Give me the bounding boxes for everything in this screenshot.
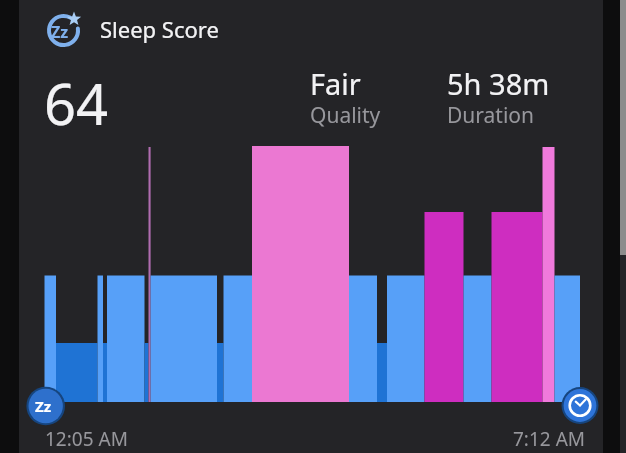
staticText: 5h 38m [447, 64, 550, 103]
staticText: Quality [310, 101, 381, 130]
staticText: Zz [51, 21, 69, 43]
staticText: 64 [44, 65, 109, 141]
staticText: 7:12 AM [513, 426, 586, 452]
staticText: Zz [35, 396, 52, 416]
staticText: 12:05 AM [45, 426, 128, 452]
staticText: Duration [447, 101, 535, 130]
staticText: Sleep Score [100, 14, 219, 44]
staticText: Fair [310, 64, 361, 103]
